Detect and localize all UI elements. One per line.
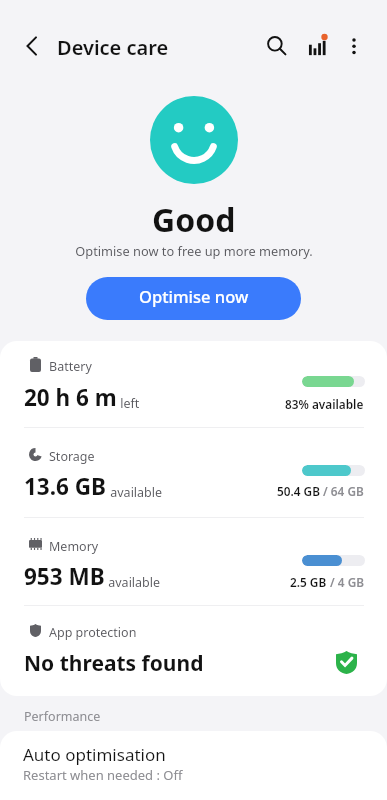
button[interactable]: Back bbox=[12, 26, 52, 66]
staticText: Good bbox=[152, 198, 236, 242]
staticText: Device care bbox=[57, 34, 169, 61]
staticText: 2.5 GB bbox=[290, 574, 327, 590]
button[interactable]: Battery bbox=[0, 341, 387, 427]
staticText: Optimise now bbox=[139, 285, 249, 307]
staticText: 953 MB bbox=[24, 561, 105, 592]
staticText: Battery bbox=[49, 358, 92, 375]
staticText: Memory bbox=[49, 538, 99, 555]
button[interactable]: Storage bbox=[0, 427, 387, 517]
staticText: Optimise now to free up more memory. bbox=[75, 242, 313, 259]
staticText: / 4 GB bbox=[327, 574, 364, 590]
staticText: Auto optimisation bbox=[23, 743, 166, 766]
staticText: Storage bbox=[49, 448, 95, 465]
staticText: / 64 GB bbox=[320, 483, 364, 499]
staticText: 20 h 6 m bbox=[24, 382, 117, 413]
staticText: No threats found bbox=[24, 649, 204, 678]
staticText: Performance bbox=[24, 708, 101, 725]
button[interactable]: Optimise now bbox=[86, 277, 301, 320]
staticText: Restart when needed : Off bbox=[23, 766, 183, 784]
staticText: App protection bbox=[49, 624, 137, 641]
staticText: available bbox=[105, 574, 161, 591]
button[interactable]: App protection bbox=[0, 605, 387, 696]
button[interactable]: Usage statistics bbox=[296, 26, 336, 66]
staticText: 83% available bbox=[285, 396, 364, 412]
button[interactable]: Memory bbox=[0, 517, 387, 605]
staticText: available bbox=[107, 484, 163, 501]
button[interactable]: Auto optimisation bbox=[0, 731, 387, 800]
staticText: 13.6 GB bbox=[24, 471, 107, 502]
button[interactable]: Search bbox=[256, 26, 296, 66]
staticText: 50.4 GB bbox=[277, 483, 320, 499]
button[interactable]: More options bbox=[334, 26, 374, 66]
staticText: left bbox=[117, 395, 140, 412]
